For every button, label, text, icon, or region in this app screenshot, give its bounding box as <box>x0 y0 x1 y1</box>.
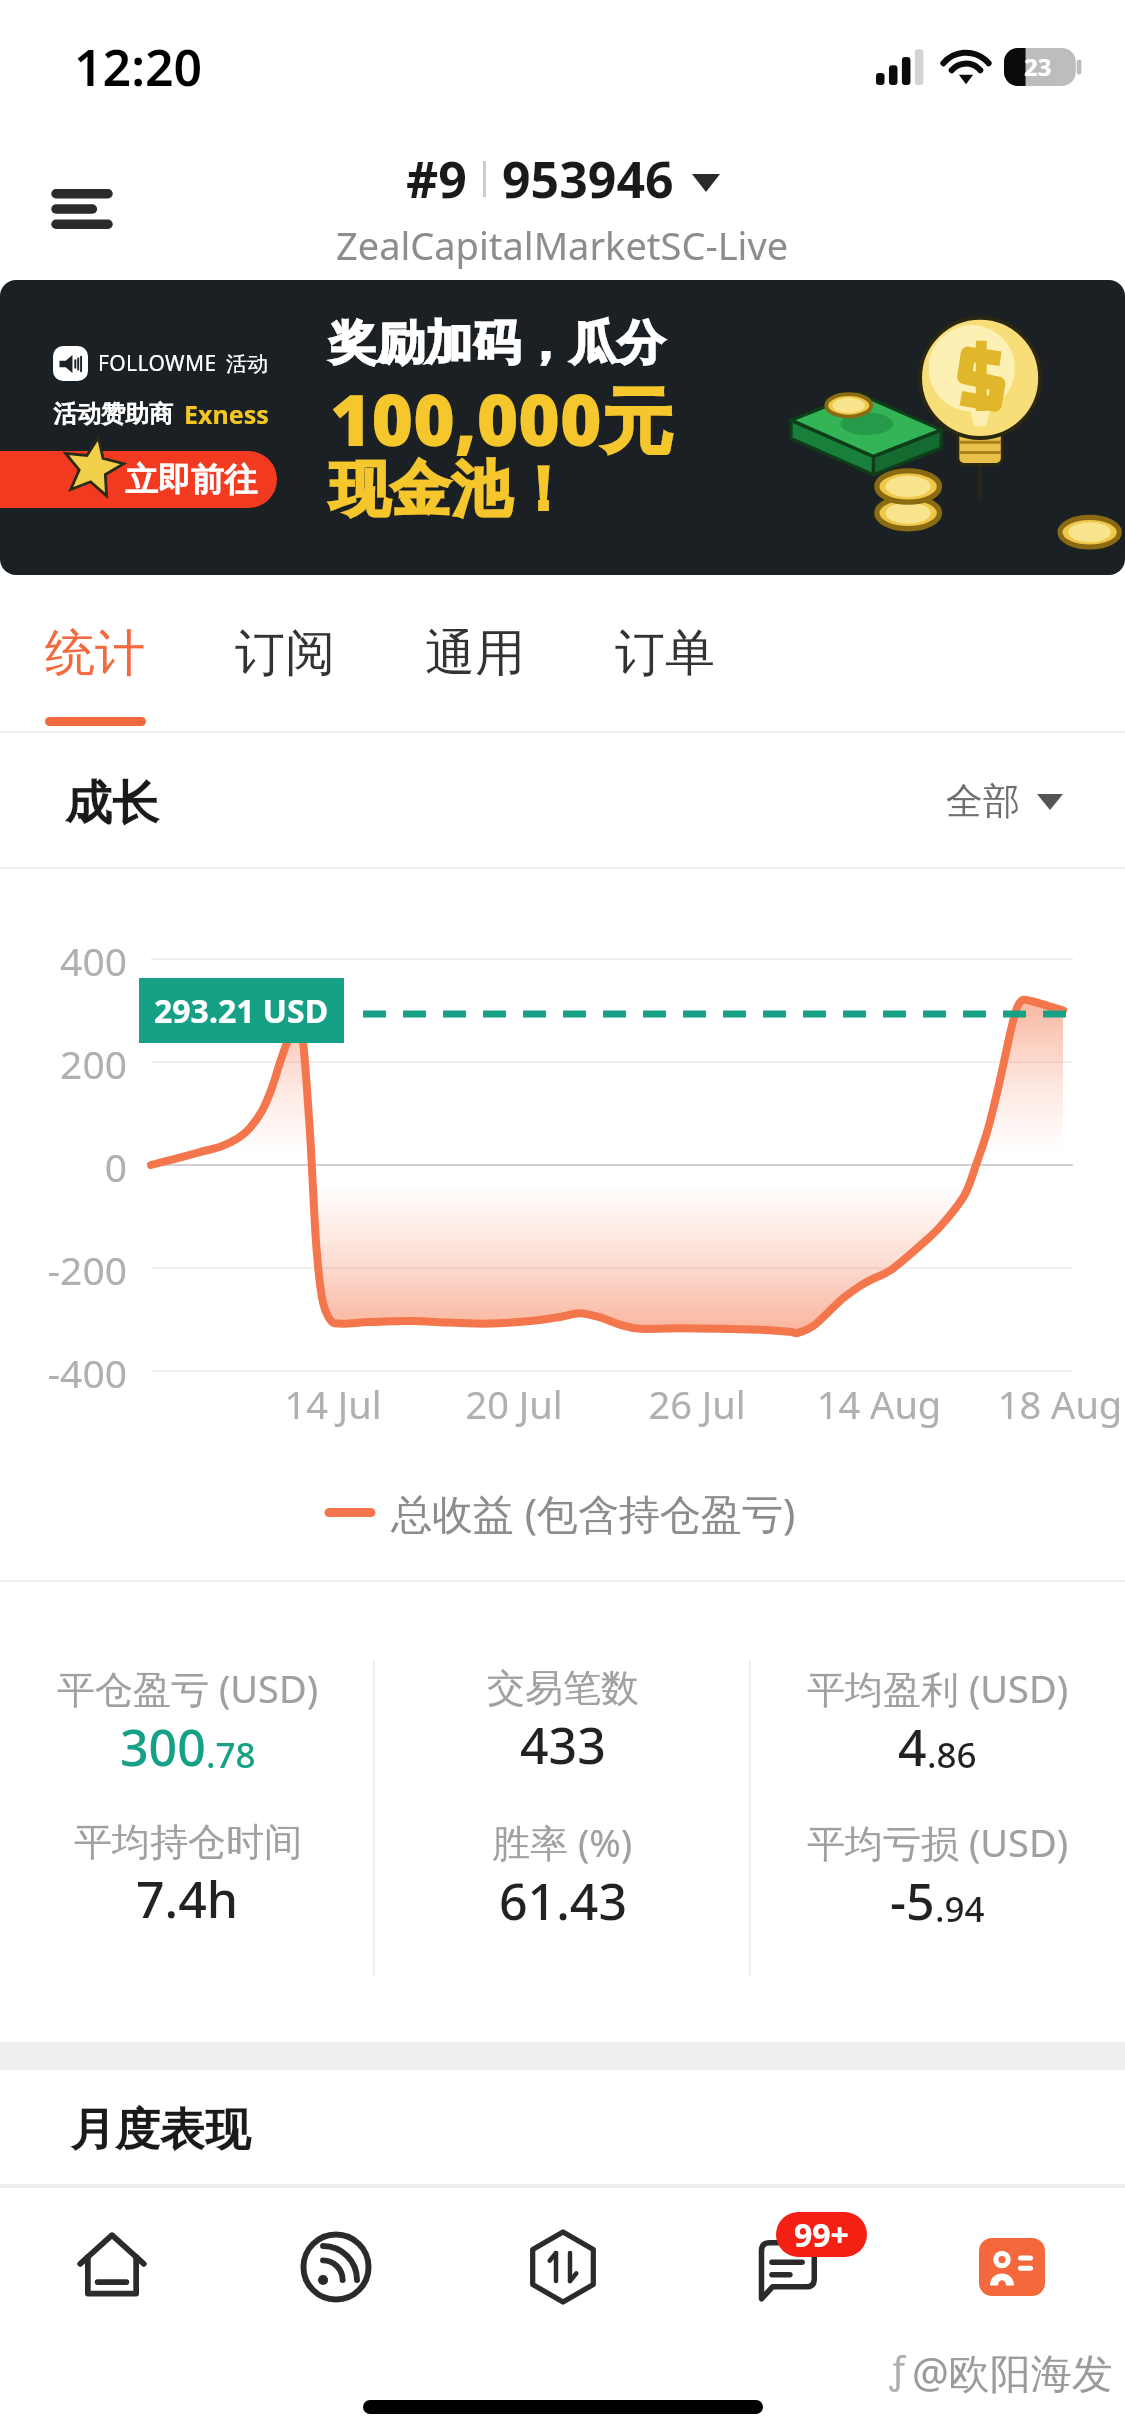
staticText: 月度表现 <box>70 2102 250 2159</box>
staticText: -400 <box>0 1346 127 1399</box>
button[interactable]: 立即前往 <box>0 451 277 508</box>
staticText: 统计 <box>45 622 145 685</box>
button[interactable]: Messages <box>727 2207 847 2327</box>
button[interactable]: 平仓盈亏 (USD) <box>0 1645 375 1799</box>
staticText: ƒ <box>890 2345 905 2394</box>
staticText: 胜率 (%) <box>492 1816 633 1868</box>
staticText: 23 <box>1024 50 1052 83</box>
staticText: 平均持仓时间 <box>74 1818 302 1866</box>
staticText: 26 Jul <box>597 1378 797 1430</box>
staticText: 平均亏损 (USD) <box>807 1816 1069 1868</box>
button[interactable]: Feed <box>276 2207 396 2327</box>
button[interactable]: Switch account <box>336 145 789 271</box>
button[interactable]: 通用 <box>380 575 570 733</box>
staticText: 成长 <box>65 774 159 833</box>
staticText: 18 Aug <box>960 1378 1125 1430</box>
staticText: 20 Jul <box>414 1378 614 1430</box>
staticText: 99+ <box>794 2213 849 2257</box>
button[interactable]: 平均亏损 (USD) <box>750 1799 1125 1953</box>
staticText: 14 Jul <box>233 1378 433 1430</box>
staticText: 通用 <box>425 622 525 685</box>
button[interactable]: 统计 <box>0 575 190 733</box>
staticText: 100,000元 <box>330 370 673 467</box>
staticText: 12:20 <box>74 33 203 101</box>
staticText: 订阅 <box>235 622 335 685</box>
staticText: 300 <box>120 1713 206 1781</box>
staticText: 现金池！ <box>329 452 573 528</box>
button[interactable]: 订单 <box>570 575 760 733</box>
staticText: 7.4h <box>136 1865 239 1933</box>
button[interactable]: 平均持仓时间 <box>0 1799 375 1953</box>
staticText: 立即前往 <box>125 459 257 501</box>
staticText: 订单 <box>615 622 715 685</box>
button[interactable]: Profile <box>952 2207 1072 2327</box>
button[interactable]: 胜率 (%) <box>375 1799 750 1953</box>
staticText: 293.21 USD <box>154 989 329 1033</box>
staticText: 200 <box>0 1037 127 1090</box>
staticText: .78 <box>206 1731 256 1779</box>
staticText: 平仓盈亏 (USD) <box>57 1662 319 1714</box>
staticText: 活动赞助商 <box>53 399 173 429</box>
button[interactable]: Menu <box>16 143 148 275</box>
staticText: 平均盈利 (USD) <box>807 1662 1069 1714</box>
staticText: 953946 <box>502 145 674 213</box>
staticText: 全部 <box>946 778 1020 825</box>
staticText: @欧阳海发 <box>912 2344 1113 2400</box>
staticText: 0 <box>0 1140 127 1193</box>
staticText: 4 <box>898 1713 927 1781</box>
staticText: 交易笔数 <box>487 1664 639 1712</box>
button[interactable]: Filter: all <box>946 778 1125 825</box>
staticText: 奖励加码，瓜分 <box>329 314 665 373</box>
button[interactable]: 订阅 <box>190 575 380 733</box>
staticText: Exness <box>184 397 269 431</box>
staticText: 433 <box>520 1711 606 1779</box>
staticText: 14 Aug <box>779 1378 979 1430</box>
button[interactable]: Promotion banner <box>0 280 1125 575</box>
staticText: -200 <box>0 1243 127 1296</box>
button[interactable]: 平均盈利 (USD) <box>750 1645 1125 1799</box>
staticText: ZealCapitalMarketSC-Live <box>336 219 789 271</box>
staticText: 400 <box>0 934 127 987</box>
button[interactable]: Trade <box>503 2207 623 2327</box>
staticText: .86 <box>927 1731 977 1779</box>
button[interactable]: Home <box>52 2207 172 2327</box>
staticText: 61.43 <box>499 1867 627 1935</box>
staticText: .94 <box>935 1885 985 1933</box>
staticText: FOLLOWME <box>98 349 217 378</box>
button[interactable]: 交易笔数 <box>375 1645 750 1799</box>
staticText: -5 <box>890 1867 935 1935</box>
staticText: 活动 <box>226 351 268 377</box>
staticText: 总收益 (包含持仓盈亏) <box>391 1485 796 1541</box>
staticText: #9 <box>406 145 467 213</box>
